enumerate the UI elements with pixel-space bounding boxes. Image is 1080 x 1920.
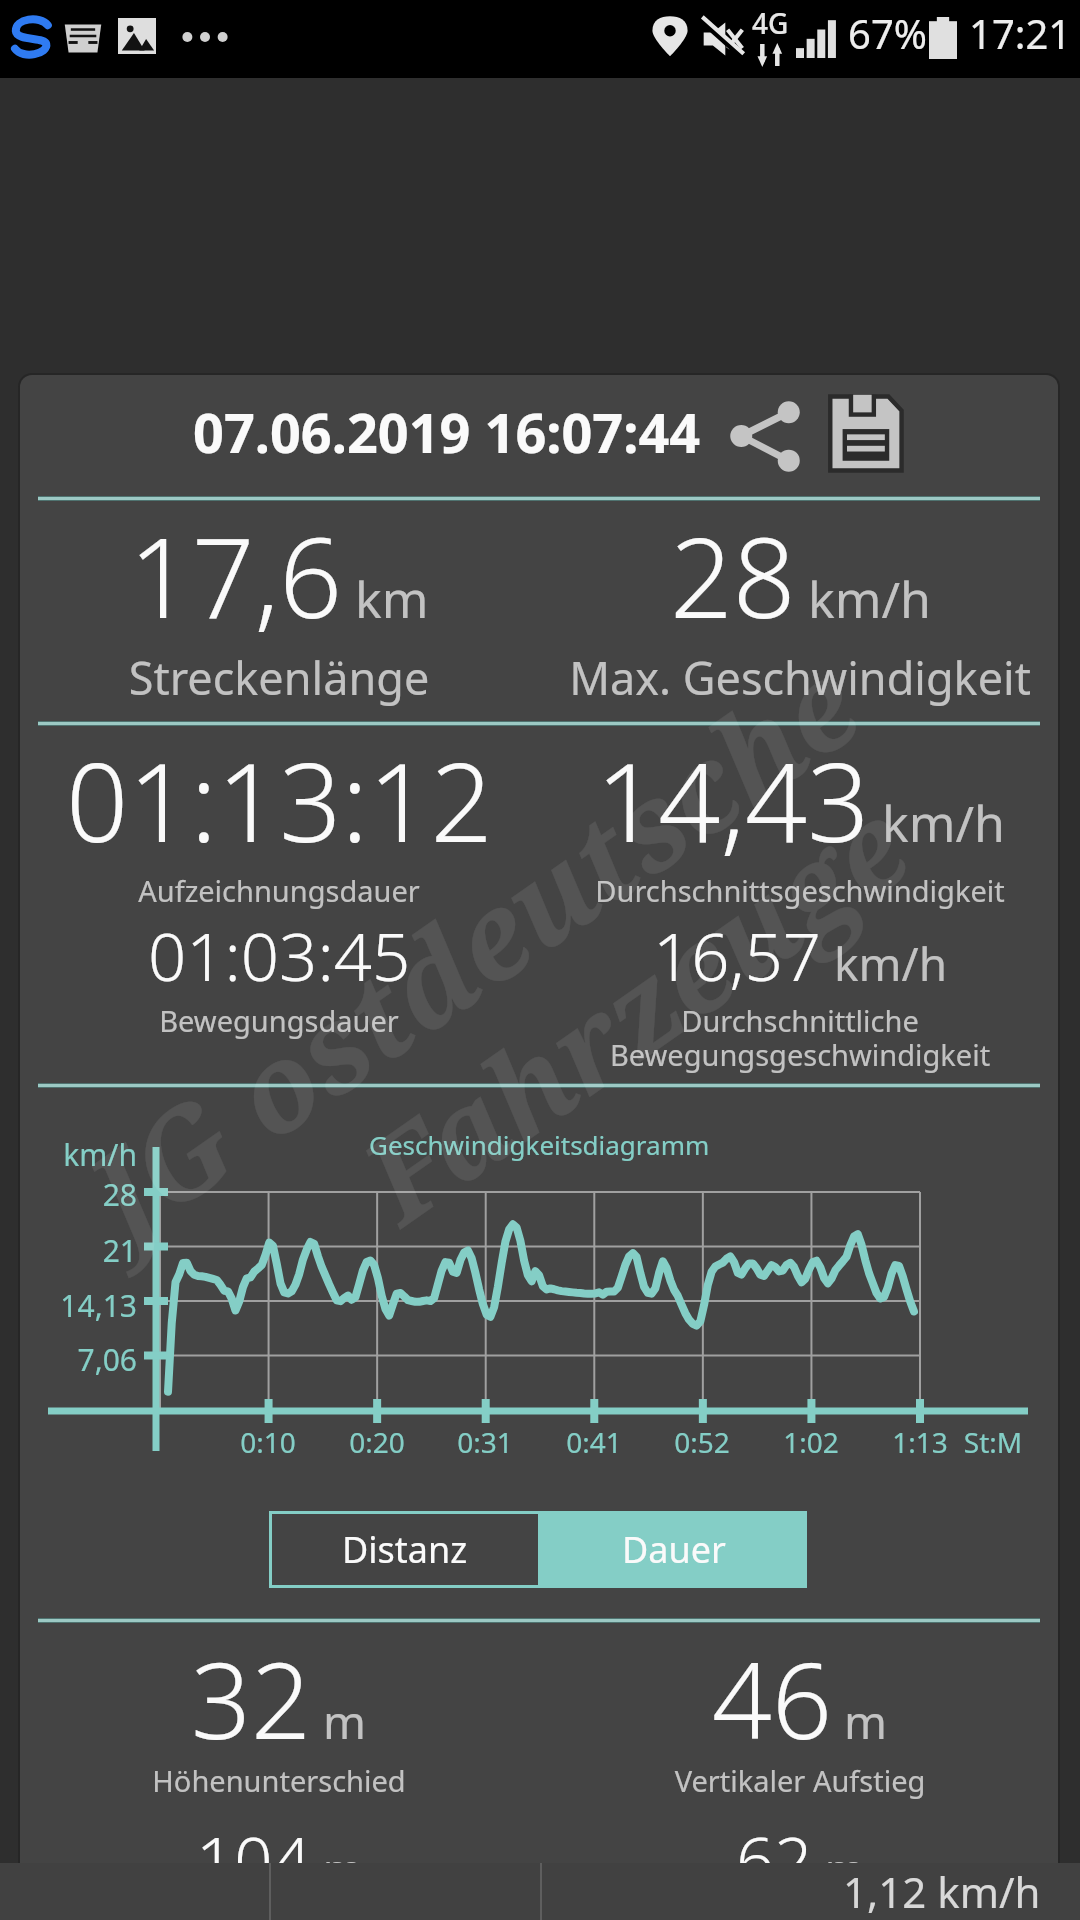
button[interactable]: 1,12 km/h — [542, 1863, 1080, 1920]
staticText: 28 — [670, 500, 796, 650]
staticText: 32 — [191, 1627, 311, 1770]
staticText: 1,12 km/h — [843, 1863, 1041, 1920]
staticText: 0:20 — [177, 1423, 577, 1461]
staticText: Dauer — [622, 1525, 726, 1574]
staticText: Max. Geschwindigkeit — [281, 647, 1058, 708]
staticText: 0:10 — [68, 1423, 468, 1461]
staticText: 07.06.2019 16:07:44 — [193, 395, 701, 469]
staticText: 21 — [20, 1230, 137, 1271]
staticText: 1:13 — [720, 1423, 1058, 1461]
staticText: Distanz — [342, 1525, 468, 1574]
staticText: 17:21 — [969, 6, 1072, 60]
staticText: Höhenunterschied — [20, 1761, 798, 1800]
button[interactable]: Distanz — [272, 1514, 538, 1585]
staticText: km/h — [808, 565, 931, 633]
staticText: Durchschnittliche — [281, 1001, 1058, 1040]
button[interactable]: Speichern — [825, 393, 913, 481]
staticText: 01:03:45 — [148, 909, 411, 1000]
staticText: 28 — [20, 1174, 137, 1215]
staticText: m — [323, 1690, 367, 1753]
button[interactable]: Dauer — [541, 1511, 807, 1588]
staticText: 46 — [712, 1627, 832, 1770]
staticText: Streckenlänge — [20, 647, 798, 708]
staticText: m — [844, 1690, 888, 1753]
staticText: Bewegungsgeschwindigkeit — [281, 1035, 1058, 1074]
staticText: Bewegungsdauer — [20, 1001, 798, 1040]
staticText: m — [323, 1840, 363, 1895]
staticText: Fahrzeuge — [330, 764, 938, 1257]
staticText: Aufzeichnungsdauer — [20, 871, 798, 910]
staticText: 67% — [848, 6, 927, 60]
staticText: m — [825, 1840, 865, 1895]
staticText: 4G — [752, 4, 789, 42]
staticText: 1:02 — [611, 1423, 1011, 1461]
staticText: km — [355, 565, 429, 633]
staticText: 0:31 — [285, 1423, 685, 1461]
staticText: 01:13:12 — [66, 725, 493, 873]
staticText: km/h — [834, 932, 948, 995]
staticText: Geschwindigkeitsdiagramm — [369, 1127, 710, 1162]
staticText: km/h — [882, 789, 1005, 857]
button[interactable]: Teilen — [721, 392, 809, 480]
staticText: 0:41 — [394, 1423, 794, 1461]
staticText: 14,43 — [596, 725, 870, 873]
staticText: Vertikaler Aufstieg — [281, 1761, 1058, 1800]
staticText: 16,57 — [653, 909, 822, 1000]
staticText: Durchschnittsgeschwindigkeit — [281, 871, 1058, 910]
staticText: 17,6 — [129, 500, 343, 650]
staticText: 62 — [736, 1813, 813, 1895]
staticText: St:M — [793, 1423, 1058, 1461]
staticText: 7,06 — [20, 1339, 137, 1380]
staticText: 0:52 — [502, 1423, 902, 1461]
staticText: 104 — [196, 1813, 311, 1895]
staticText: km/h — [20, 1134, 137, 1175]
staticText: JG ostdeutsche — [55, 621, 889, 1273]
staticText: 14,13 — [20, 1285, 137, 1326]
